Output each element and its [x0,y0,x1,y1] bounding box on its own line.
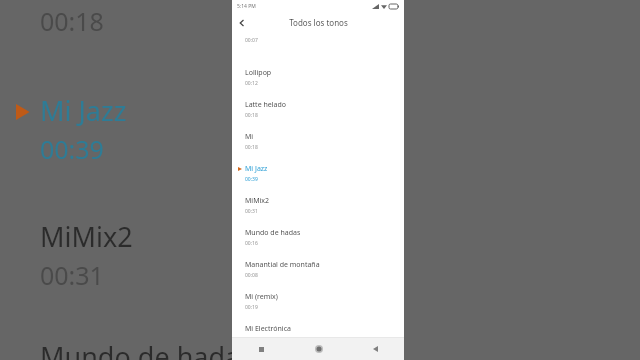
staticText: Latte helado [245,100,286,110]
staticText: 00:19 [245,304,258,311]
staticText: 00:31 [40,258,104,292]
staticText: 00:18 [245,144,258,151]
staticText: Mundo de hadas [245,228,301,238]
staticText: 00:16 [245,240,258,247]
button[interactable]: Home [290,338,347,360]
staticText: Mi Jazz [245,164,268,174]
button[interactable]: Back [232,13,252,33]
staticText: Mundo de hadas [40,338,232,360]
staticText: 00:39 [40,132,104,166]
staticText: 00:18 [40,4,104,38]
button[interactable]: Recents [232,338,290,360]
staticText: Mi Jazz [40,92,127,129]
staticText: 00:39 [245,176,258,183]
staticText: 00:31 [245,208,258,215]
button[interactable]: Mi [232,132,404,164]
button[interactable]: Latte helado [232,100,404,132]
staticText: 00:08 [245,272,258,279]
button[interactable]: Manantial de montaña [232,260,404,292]
staticText: 00:18 [245,112,258,119]
staticText: 00:12 [245,80,258,87]
staticText: 5:14 PM [237,3,256,10]
button[interactable]: Mundo de hadas [232,228,404,260]
button[interactable]: Mi Jazz [232,164,404,196]
staticText: MiMix2 [40,218,133,255]
button[interactable]: 00:07 [232,36,404,68]
staticText: Lollipop [245,68,272,78]
staticText: Mi [245,132,254,142]
staticText: Todos los tonos [289,17,348,28]
staticText: Mi Electrónica [245,324,291,334]
button[interactable]: Mi Electrónica [232,324,404,337]
staticText: Mi (remix) [245,292,278,302]
staticText: Manantial de montaña [245,260,320,270]
button[interactable]: MiMix2 [232,196,404,228]
staticText: MiMix2 [245,196,270,206]
button[interactable]: Lollipop [232,68,404,100]
button[interactable]: Back [347,338,404,360]
staticText: 00:07 [245,37,258,44]
button[interactable]: Mi (remix) [232,292,404,324]
